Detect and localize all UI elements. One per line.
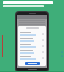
button[interactable] [20,44,44,48]
button[interactable]: Submit [25,62,40,65]
button[interactable] [20,56,44,60]
button[interactable] [3,1,61,7]
button[interactable] [20,32,44,36]
button[interactable] [20,38,44,42]
button[interactable] [20,50,44,54]
